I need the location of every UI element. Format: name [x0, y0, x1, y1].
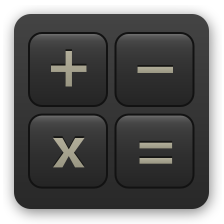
button[interactable]: Multiply	[29, 115, 107, 188]
button[interactable]: Equals	[115, 115, 193, 188]
button[interactable]: Plus	[29, 33, 107, 106]
button[interactable]: Minus	[115, 33, 193, 106]
